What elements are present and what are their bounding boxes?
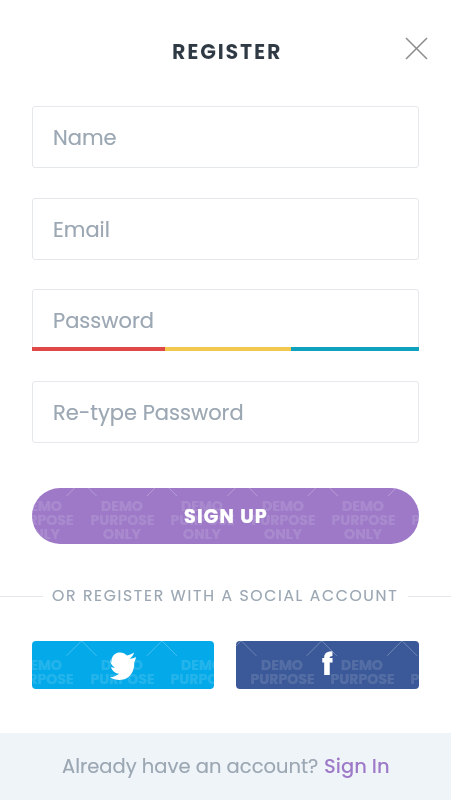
staticText: PURPOSE [251, 510, 316, 530]
staticText: DEMO [181, 655, 214, 675]
staticText: SIGN UP [184, 503, 268, 530]
staticText: ONLY [103, 524, 141, 544]
staticText: PURPOSE [90, 510, 155, 530]
staticText: DEMO [32, 655, 62, 675]
staticText: DEMO [341, 655, 383, 675]
staticText: PURPOSE [331, 510, 396, 530]
staticText: PURPOSE [170, 510, 235, 530]
staticText: DEMO [342, 496, 384, 516]
staticText: PURPOSE [32, 510, 74, 530]
staticText: DEMO [32, 496, 62, 516]
button[interactable]: DEMO [32, 488, 419, 544]
button[interactable]: Re-type Password [32, 381, 419, 443]
staticText: DEMO [181, 496, 223, 516]
staticText: ONLY [32, 524, 60, 544]
staticText: PURPOSE [90, 669, 155, 689]
staticText: f [322, 644, 333, 686]
staticText: REGISTER [172, 37, 283, 66]
staticText: DEMO [262, 496, 304, 516]
staticText: PURPOSE [170, 669, 214, 689]
staticText: Sign In [324, 753, 390, 780]
button[interactable]: Sign In [324, 753, 390, 780]
staticText: ONLY [183, 684, 214, 689]
staticText: Re-type Password [53, 398, 244, 427]
staticText: DEMO [261, 655, 303, 675]
staticText: PURPOSE [411, 510, 419, 530]
staticText: Email [53, 215, 110, 244]
staticText: Name [53, 123, 117, 152]
button[interactable]: Email [32, 198, 419, 260]
staticText: OR REGISTER WITH A SOCIAL ACCOUNT [52, 585, 399, 607]
staticText: ONLY [183, 524, 221, 544]
staticText: PURPOSE [250, 669, 315, 689]
staticText: PURPOSE [330, 669, 395, 689]
staticText: Already have an account? [62, 753, 324, 780]
staticText: ONLY [344, 524, 382, 544]
button[interactable]: Sign up with Twitter [32, 641, 214, 689]
staticText: DEMO [101, 496, 143, 516]
staticText: ONLY [264, 524, 302, 544]
staticText: Password [53, 306, 154, 335]
button[interactable]: Password [32, 289, 419, 351]
button[interactable]: Sign up with Facebook [236, 641, 419, 689]
button[interactable]: Close [395, 27, 437, 69]
staticText: ONLY [32, 684, 60, 689]
staticText: DEMO [101, 655, 143, 675]
staticText: PURPOSE [32, 669, 74, 689]
staticText: PURPOSE [410, 669, 419, 689]
button[interactable]: Name [32, 106, 419, 168]
